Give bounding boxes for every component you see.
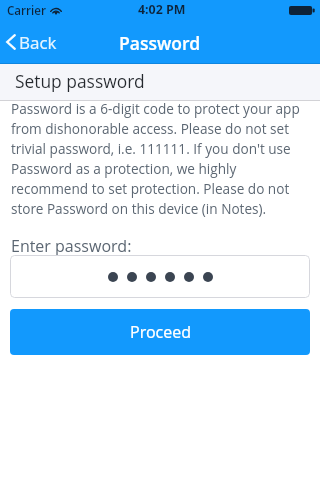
button[interactable]: Back <box>0 25 67 64</box>
staticText: Setup password <box>15 69 145 93</box>
button[interactable]: Proceed <box>10 309 310 355</box>
other: Wi-Fi <box>49 5 63 15</box>
staticText: Carrier <box>7 3 46 19</box>
staticText: 4:02 PM <box>138 1 186 18</box>
staticText: Enter password: <box>11 235 132 257</box>
button[interactable]: Password entry <box>10 255 310 298</box>
staticText: Password is a 6-digit code to protect yo… <box>11 99 311 218</box>
other: Battery <box>289 6 315 15</box>
staticText: Back <box>19 31 57 54</box>
staticText: Proceed <box>130 321 191 343</box>
staticText: Password <box>119 31 201 55</box>
